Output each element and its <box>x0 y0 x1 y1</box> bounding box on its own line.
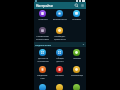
button[interactable]: Конфиден- циальность <box>51 27 68 41</box>
staticText: Уведомле- ния <box>37 74 48 80</box>
button[interactable] <box>68 84 85 90</box>
staticText: Безопасность <box>53 18 67 21</box>
button[interactable]: Звонки <box>68 49 85 60</box>
staticText: Хранилище <box>71 74 83 77</box>
button[interactable]: Search <box>74 3 79 8</box>
staticText: Настройки <box>36 4 53 8</box>
staticText: Справка <box>72 18 81 21</box>
staticText: Общий доступ <box>56 57 64 63</box>
staticText: Батарея <box>55 74 64 77</box>
staticText: Доступ на устройстве <box>37 57 49 63</box>
button[interactable]: Хранилище <box>68 66 85 77</box>
staticText: Звонки <box>73 57 81 60</box>
button[interactable]: Общий доступ <box>51 49 68 63</box>
staticText: Управление устройством <box>36 35 49 41</box>
button[interactable] <box>34 84 51 90</box>
button[interactable]: Уведомле- ния <box>34 66 51 80</box>
button[interactable]: Батарея <box>51 66 68 77</box>
button[interactable]: More options <box>80 3 85 8</box>
button[interactable]: Доступ на устройстве <box>34 49 51 63</box>
button[interactable]: Управление устройством <box>34 27 51 41</box>
staticText: Аккаунты <box>38 18 48 21</box>
button[interactable]: Аккаунты <box>34 10 51 21</box>
button[interactable]: Справка <box>68 10 85 21</box>
button[interactable]: Подключения <box>34 42 86 47</box>
button[interactable]: Безопасность <box>51 10 68 21</box>
staticText: Подключения <box>35 43 52 46</box>
button[interactable] <box>51 84 68 90</box>
staticText: Конфиден- циальность <box>54 35 66 41</box>
